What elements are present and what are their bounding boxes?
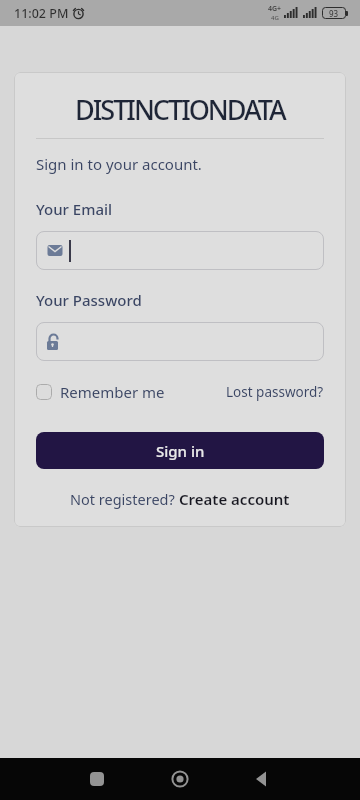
button[interactable] (90, 772, 104, 786)
staticText: Your Email (36, 199, 113, 219)
button[interactable]: Sign in (36, 432, 324, 469)
button[interactable] (171, 770, 189, 788)
staticText: Create account (179, 489, 290, 509)
staticText: DISTINCTIONDATA (75, 91, 285, 128)
staticText: 93 (329, 8, 339, 19)
staticText: 4G (271, 14, 279, 22)
staticText: Remember me (60, 382, 165, 402)
staticText: 4G+ (268, 4, 282, 14)
staticText: Your Password (36, 290, 142, 310)
button[interactable] (47, 231, 324, 270)
button[interactable] (36, 384, 52, 400)
button[interactable]: Lost password? (226, 383, 324, 401)
button[interactable]: Not registered? (36, 489, 324, 509)
button[interactable] (254, 771, 270, 787)
staticText: Not registered? (70, 489, 179, 509)
staticText: 11:02 PM (14, 5, 69, 22)
staticText: Sign in to your account. (36, 154, 202, 174)
button[interactable] (47, 322, 324, 361)
staticText: Sign in (156, 441, 205, 461)
